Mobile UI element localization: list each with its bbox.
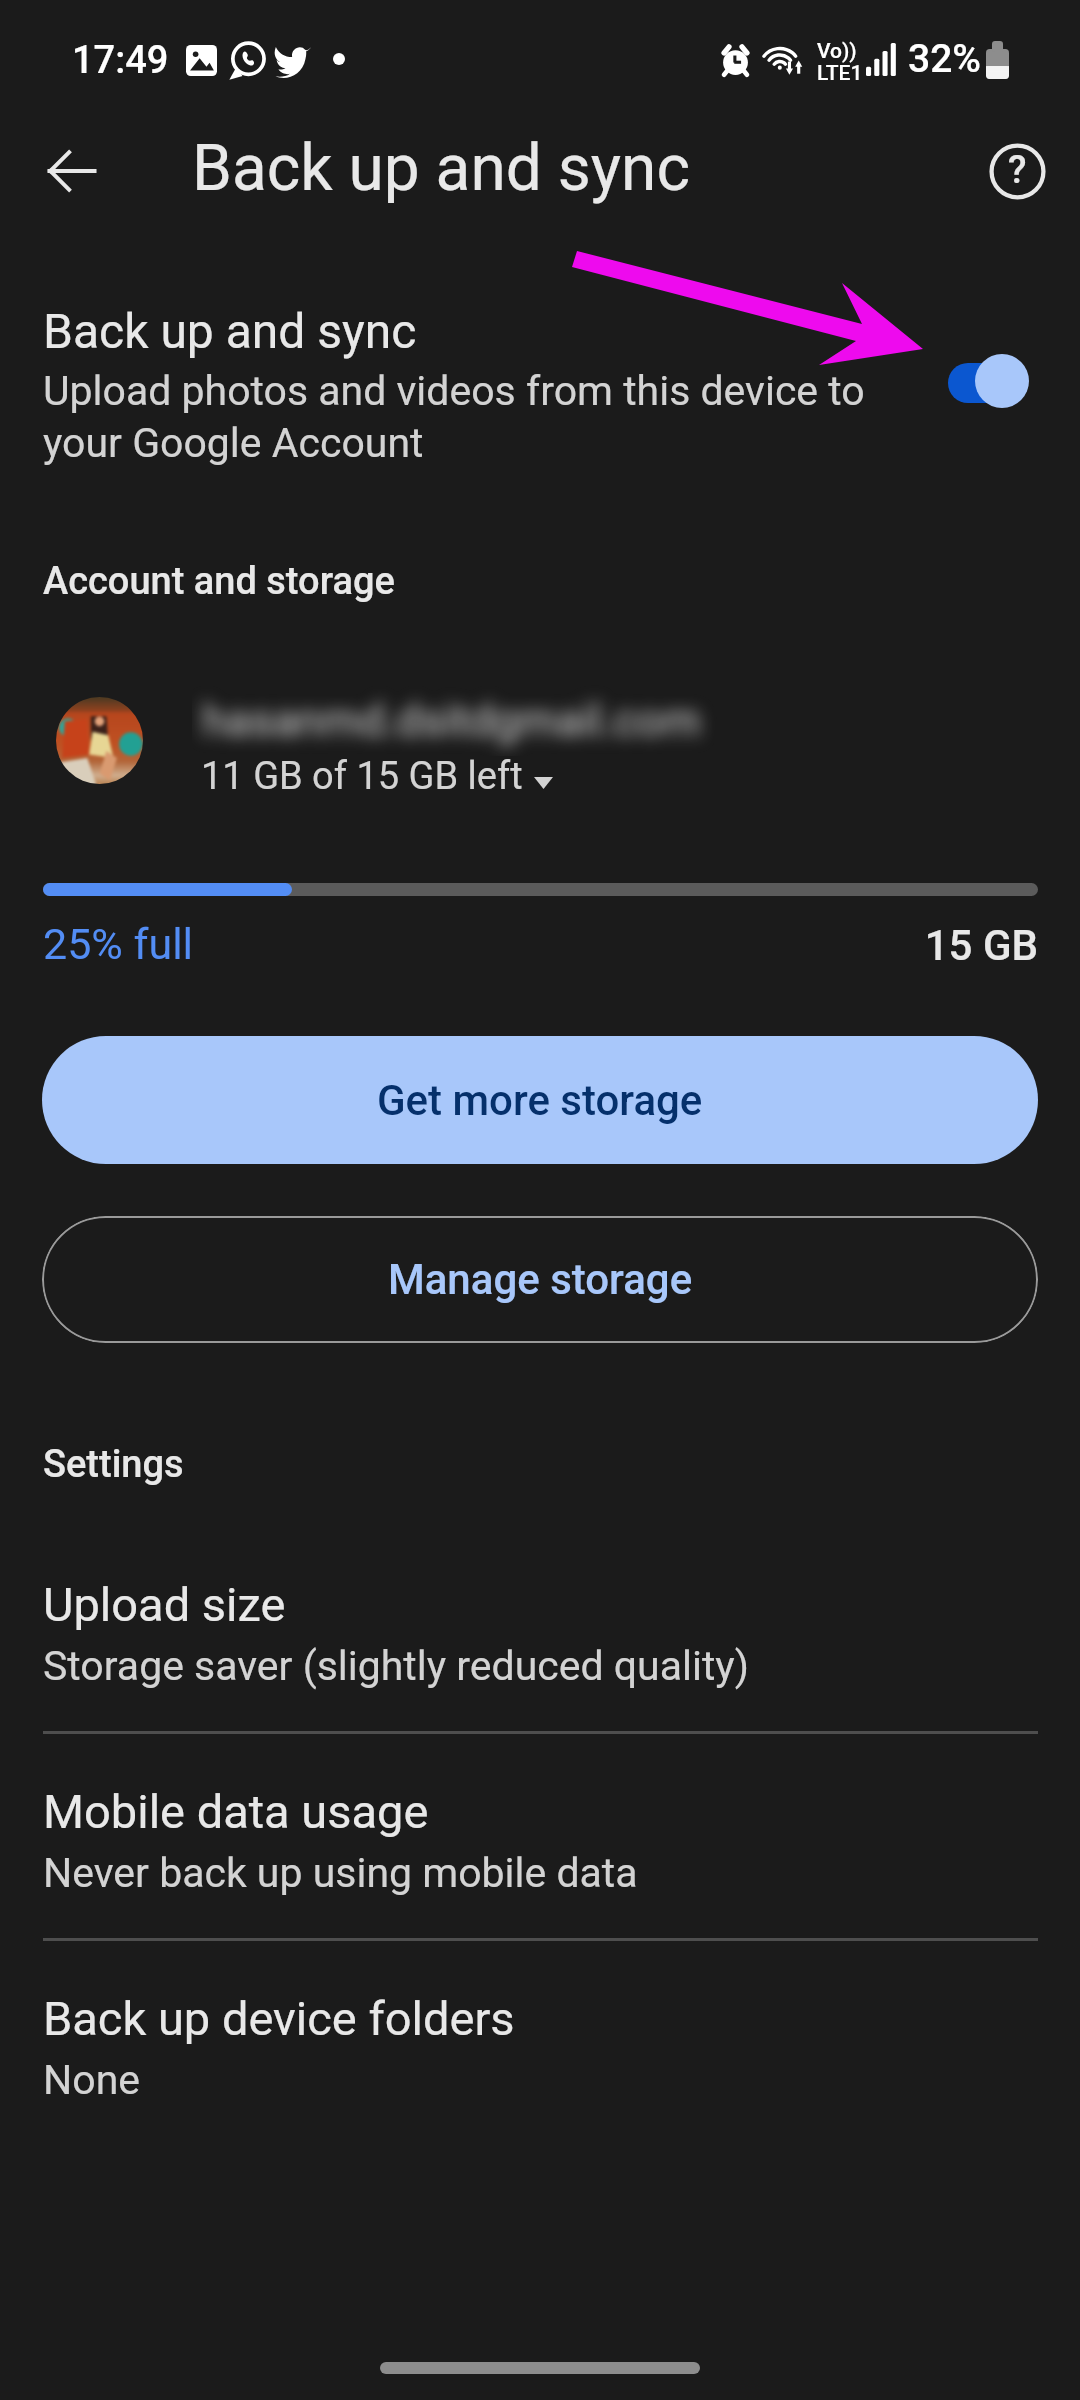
staticText: ? [1008, 148, 1027, 193]
staticText: 32% [908, 36, 982, 82]
button[interactable]: Manage storage [42, 1216, 1038, 1343]
staticText: 17:49 [72, 38, 169, 83]
staticText: Account and storage [43, 559, 395, 604]
button[interactable] [0, 1550, 1080, 1720]
staticText: Never back up using mobile data [43, 1849, 638, 1897]
staticText: hasanmd.dsitdgmail.com [202, 695, 701, 747]
staticText: Back up and sync [192, 131, 690, 206]
staticText: Manage storage [388, 1255, 693, 1304]
button[interactable] [0, 1964, 1080, 2134]
staticText: 15 GB [0, 921, 1038, 970]
staticText: LTE1 [817, 61, 863, 86]
button[interactable]: Back [24, 123, 120, 219]
staticText: Back up device folders [43, 1991, 515, 2046]
button[interactable] [0, 680, 1080, 810]
button[interactable]: Get more storage [42, 1036, 1038, 1164]
button[interactable]: Back up and sync toggle, on [936, 340, 1042, 424]
staticText: Vo)) [817, 39, 857, 64]
staticText: Upload size [43, 1577, 286, 1632]
staticText: Settings [43, 1442, 184, 1487]
staticText: Back up and sync [43, 303, 417, 359]
staticText: 25% full [43, 919, 194, 969]
staticText: Storage saver (slightly reduced quality) [43, 1642, 750, 1690]
staticText: Mobile data usage [43, 1784, 429, 1839]
staticText: None [43, 2056, 141, 2104]
staticText: 11 GB of 15 GB left [201, 754, 523, 799]
button[interactable] [0, 1757, 1080, 1927]
staticText: Get more storage [377, 1076, 703, 1125]
button[interactable] [0, 275, 1080, 500]
button[interactable]: Help [969, 123, 1065, 219]
staticText: Upload photos and videos from this devic… [43, 367, 873, 467]
